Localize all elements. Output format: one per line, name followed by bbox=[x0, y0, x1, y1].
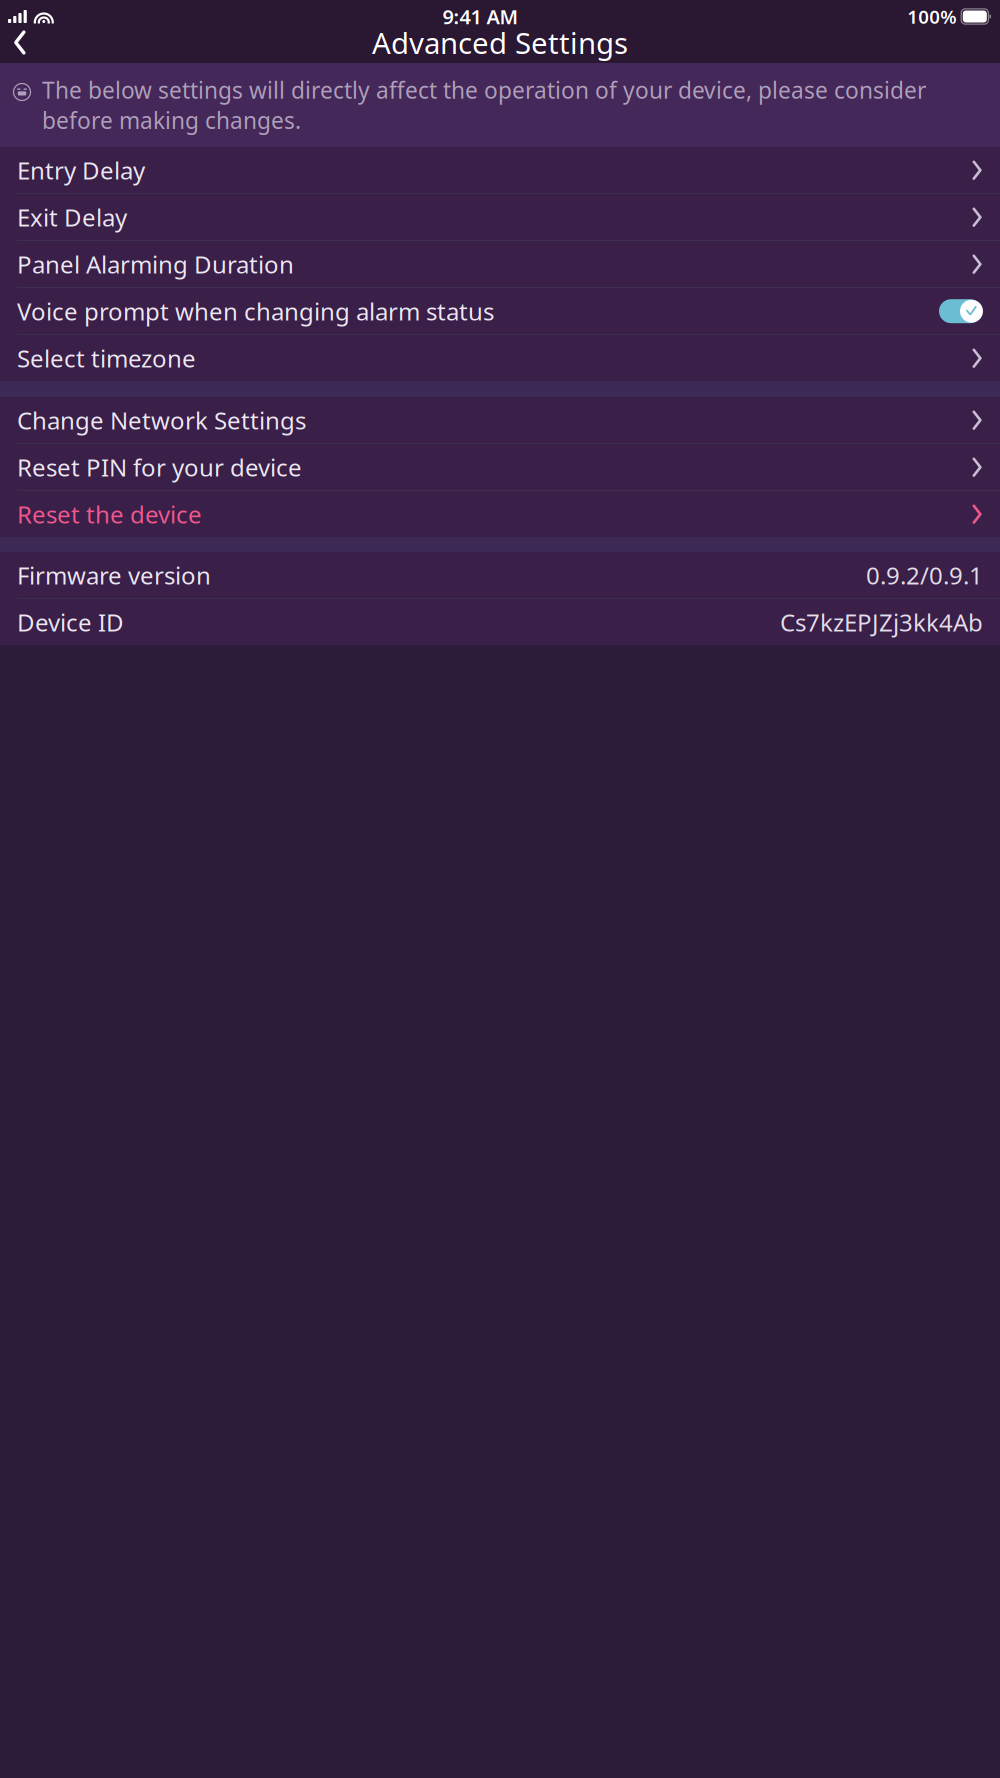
button[interactable]: Select timezone bbox=[0, 335, 1000, 381]
staticText: Advanced Settings bbox=[372, 23, 628, 62]
button[interactable]: Exit Delay bbox=[0, 194, 1000, 240]
button[interactable]: Change Network Settings bbox=[0, 397, 1000, 443]
staticText: Voice prompt when changing alarm status bbox=[17, 295, 494, 327]
staticText: 0.9.2/0.9.1 bbox=[866, 559, 983, 591]
staticText: 100% bbox=[907, 4, 956, 29]
staticText: The below settings will directly affect … bbox=[42, 75, 926, 135]
button[interactable]: Reset the device bbox=[0, 491, 1000, 537]
staticText: Reset PIN for your device bbox=[17, 451, 302, 483]
button[interactable]: Entry Delay bbox=[0, 147, 1000, 193]
staticText: Change Network Settings bbox=[17, 404, 306, 436]
button[interactable]: Panel Alarming Duration bbox=[0, 241, 1000, 287]
staticText: Reset the device bbox=[17, 498, 202, 530]
staticText: 9:41 AM bbox=[442, 3, 518, 30]
staticText: Cs7kzEPJZj3kk4Ab bbox=[780, 606, 983, 638]
staticText: Exit Delay bbox=[17, 201, 127, 233]
button[interactable]: Voice prompt when changing alarm status bbox=[0, 288, 1000, 334]
button[interactable]: Reset PIN for your device bbox=[0, 444, 1000, 490]
staticText: Panel Alarming Duration bbox=[17, 248, 294, 280]
staticText: Entry Delay bbox=[17, 154, 145, 186]
button[interactable]: Back bbox=[0, 21, 43, 63]
staticText: Device ID bbox=[17, 606, 124, 638]
staticText: Firmware version bbox=[17, 559, 211, 591]
staticText: Select timezone bbox=[17, 342, 196, 374]
